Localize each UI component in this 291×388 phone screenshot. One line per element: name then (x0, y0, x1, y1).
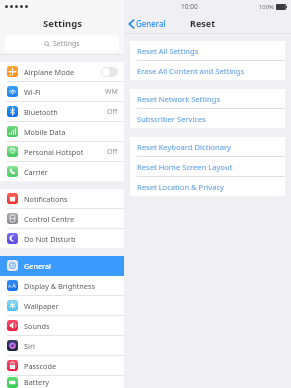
staticText: 100% (259, 3, 274, 11)
staticText: Settings (53, 39, 80, 49)
staticText: Off (107, 147, 118, 157)
staticText: Bluetooth (24, 107, 58, 117)
button[interactable]: Control Centre (0, 209, 124, 229)
staticText: 10:00 (181, 2, 198, 11)
button[interactable]: Reset Network Settings (130, 89, 285, 109)
staticText: Erase All Content and Settings (137, 66, 245, 76)
button[interactable]: Reset Keyboard Dictionary (130, 137, 285, 157)
button[interactable]: Sounds (0, 316, 124, 336)
staticText: WM (105, 87, 118, 97)
staticText: General (24, 261, 51, 271)
button[interactable]: Personal Hotspot (0, 142, 124, 162)
button[interactable]: General (0, 256, 124, 276)
staticText: Subscriber Services (137, 114, 206, 124)
staticText: Reset Network Settings (137, 94, 221, 104)
button[interactable]: Bluetooth (0, 102, 124, 122)
staticText: Siri (24, 341, 35, 351)
staticText: Carrier (24, 167, 48, 177)
staticText: General (136, 18, 166, 29)
button[interactable]: Battery (0, 376, 124, 388)
button[interactable]: Siri (0, 336, 124, 356)
button[interactable]: Reset Location & Privacy (130, 177, 285, 196)
staticText: Personal Hotspot (24, 147, 84, 157)
staticText: Do Not Disturb (24, 234, 76, 244)
button[interactable]: General (129, 18, 166, 29)
staticText: Settings (43, 17, 82, 30)
button[interactable]: Reset All Settings (130, 41, 285, 61)
staticText: Off (107, 107, 118, 117)
staticText: Control Centre (24, 214, 75, 224)
staticText: Display & Brightness (24, 281, 95, 291)
staticText: Reset Keyboard Dictionary (137, 142, 231, 152)
staticText: Reset (190, 17, 216, 29)
button[interactable]: Passcode (0, 356, 124, 376)
staticText: Airplane Mode (24, 67, 75, 77)
button[interactable]: Reset Home Screen Layout (130, 157, 285, 177)
staticText: Reset Home Screen Layout (137, 162, 233, 172)
staticText: Sounds (24, 321, 50, 331)
staticText: Reset All Settings (137, 46, 199, 56)
button[interactable]: Subscriber Services (130, 109, 285, 128)
staticText: Battery (24, 377, 49, 387)
button[interactable]: Wi-Fi (0, 82, 124, 102)
staticText: Reset Location & Privacy (137, 182, 224, 192)
staticText: Wallpaper (24, 301, 59, 311)
staticText: Wi-Fi (24, 87, 41, 97)
button[interactable]: Carrier (0, 162, 124, 181)
button[interactable]: Notifications (0, 189, 124, 209)
button[interactable]: Erase All Content and Settings (130, 61, 285, 80)
button[interactable]: Mobile Data (0, 122, 124, 142)
staticText: Mobile Data (24, 127, 66, 137)
button[interactable]: Airplane Mode (0, 62, 124, 82)
staticText: Passcode (24, 361, 57, 371)
button[interactable]: Airplane Mode toggle (101, 67, 118, 77)
staticText: Notifications (24, 194, 68, 204)
button[interactable]: Display & Brightness (0, 276, 124, 296)
button[interactable]: Wallpaper (0, 296, 124, 316)
button[interactable]: Do Not Disturb (0, 229, 124, 248)
button[interactable]: Settings (5, 35, 119, 52)
